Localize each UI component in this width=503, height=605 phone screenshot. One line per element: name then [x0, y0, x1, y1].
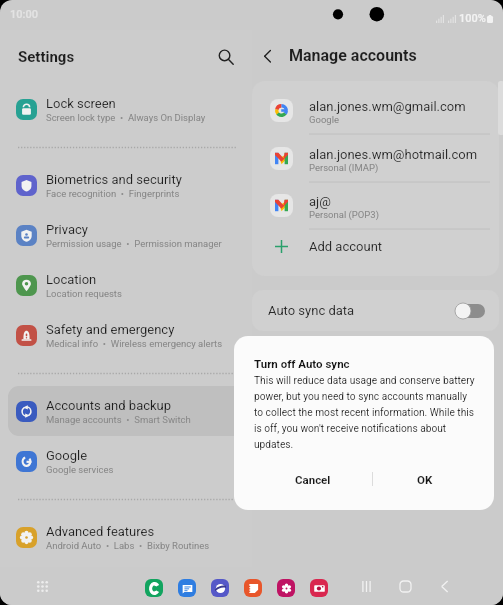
button[interactable]: Biometrics and security	[8, 160, 244, 210]
button[interactable]: Recents	[353, 573, 379, 599]
staticText: Location requests	[46, 288, 122, 299]
staticText: 10:00	[10, 8, 38, 21]
button[interactable]: alan.jones.wm@gmail.com	[252, 95, 499, 129]
staticText: alan.jones.wm@hotmail.com	[309, 147, 478, 162]
button[interactable]: Home	[392, 573, 418, 599]
staticText: Accounts and backup	[46, 398, 172, 413]
button[interactable]: Apps	[31, 575, 54, 598]
button[interactable]: Safety and emergency	[8, 310, 244, 360]
staticText: alan.jones.wm@gmail.com	[309, 99, 466, 114]
staticText: Medical info • Wireless emergency alerts	[46, 338, 223, 349]
staticText: Lock screen	[46, 96, 116, 111]
button[interactable]: Location	[8, 260, 244, 310]
staticText: Google services	[46, 464, 114, 475]
button[interactable]: Add account	[252, 231, 499, 261]
staticText: Google	[46, 448, 88, 463]
staticText: Personal (IMAP)	[309, 162, 379, 173]
button[interactable]: Lock screen	[8, 84, 244, 134]
button[interactable]: Back	[431, 573, 457, 599]
staticText: Turn off Auto sync	[254, 357, 350, 370]
button[interactable]: Internet	[211, 579, 229, 597]
staticText: OK	[417, 473, 433, 486]
button[interactable]: OK	[372, 458, 478, 500]
staticText: Google	[309, 114, 339, 125]
staticText: Privacy	[46, 222, 88, 237]
staticText: Safety and emergency	[46, 322, 175, 337]
staticText: 100%	[459, 12, 486, 25]
button[interactable]: Messages	[178, 579, 196, 597]
staticText: Advanced features	[46, 524, 155, 539]
staticText: Manage accounts	[289, 46, 417, 65]
staticText: Screen lock type • Always On Display	[46, 112, 206, 123]
button[interactable]: Google	[8, 436, 244, 486]
button[interactable]: Phone	[145, 579, 163, 597]
button[interactable]: Auto sync data	[252, 290, 499, 331]
button[interactable]: Notes	[244, 579, 262, 597]
button[interactable]: Accounts and backup	[8, 386, 244, 436]
button[interactable]: Advanced features	[8, 512, 244, 562]
button[interactable]: Cancel	[246, 458, 379, 500]
staticText: Cancel	[295, 473, 331, 486]
staticText: Settings	[18, 48, 75, 66]
staticText: Manage accounts • Smart Switch	[46, 414, 191, 425]
button[interactable]: Search	[212, 43, 240, 71]
staticText: Location	[46, 272, 97, 287]
staticText: Permission usage • Permission manager	[46, 238, 222, 249]
staticText: Biometrics and security	[46, 172, 182, 187]
button[interactable]: alan.jones.wm@hotmail.com	[252, 143, 499, 177]
button[interactable]: Auto sync toggle	[455, 302, 485, 320]
button[interactable]: aj@	[252, 190, 499, 224]
button[interactable]: Camera	[310, 579, 328, 597]
staticText: Face recognition • Fingerprints	[46, 188, 180, 199]
staticText: Personal (POP3)	[309, 209, 380, 220]
staticText: Android Auto • Labs • Bixby Routines	[46, 540, 210, 551]
staticText: This will reduce data usage and conserve…	[254, 375, 477, 451]
staticText: Add account	[309, 239, 383, 254]
button[interactable]: Privacy	[8, 210, 244, 260]
button[interactable]: Gallery	[277, 579, 295, 597]
button[interactable]: Back	[252, 40, 284, 72]
staticText: aj@	[309, 194, 331, 209]
staticText: Auto sync data	[268, 303, 355, 318]
